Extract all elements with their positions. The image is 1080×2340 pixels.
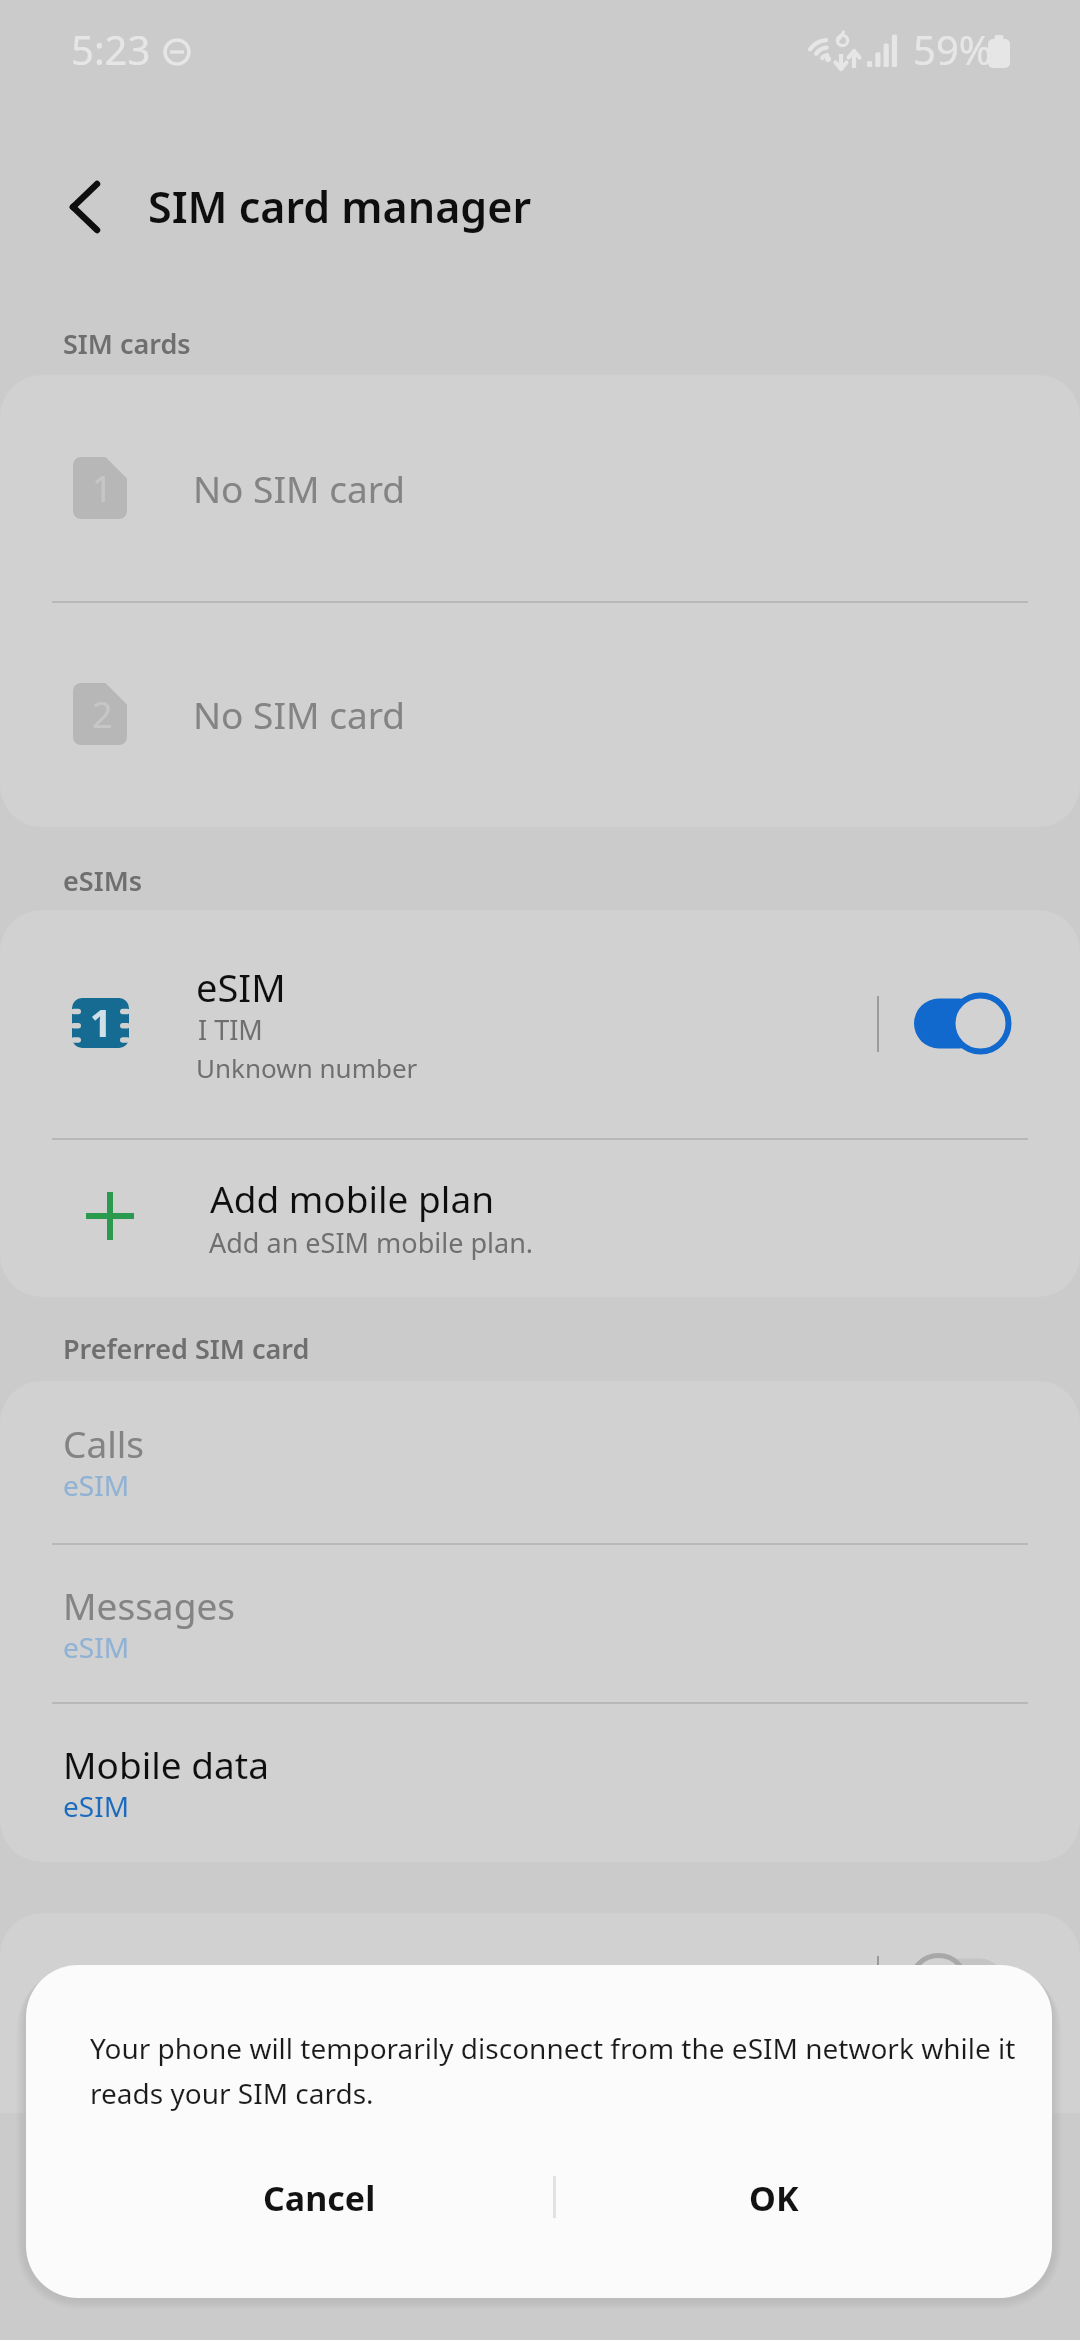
staticText: Calls — [63, 1418, 144, 1468]
staticText: No SIM card — [193, 463, 405, 513]
staticText: 2 — [92, 690, 113, 739]
button[interactable] — [10, 375, 1070, 601]
staticText: 1 — [92, 464, 113, 513]
staticText: 59% — [913, 22, 992, 76]
button[interactable] — [10, 1702, 1070, 1862]
staticText: Cancel — [263, 2175, 376, 2221]
staticText: SIM cards — [63, 325, 191, 362]
button[interactable]: Turn eSIM off — [894, 978, 1030, 1070]
staticText: OK — [749, 2175, 799, 2221]
staticText: Preferred SIM card — [63, 1330, 310, 1367]
staticText: eSIM — [63, 1628, 130, 1666]
button[interactable] — [10, 910, 1070, 1138]
button[interactable]: Navigate up — [46, 171, 118, 243]
button[interactable] — [10, 601, 1070, 827]
staticText: Messages — [63, 1580, 235, 1630]
staticText: 5:23 — [71, 22, 151, 76]
staticText: Mobile data — [63, 1739, 269, 1789]
button[interactable] — [10, 1543, 1070, 1702]
staticText: Add mobile plan — [210, 1173, 495, 1223]
staticText: I TIM — [198, 1011, 263, 1048]
staticText: 1 — [90, 996, 112, 1046]
staticText: Your phone will temporarily disconnect f… — [90, 2029, 1016, 2113]
staticText: SIM card manager — [148, 177, 532, 236]
button[interactable] — [10, 1381, 1070, 1543]
staticText: eSIMs — [63, 862, 143, 899]
button[interactable]: OK — [539, 2165, 1052, 2298]
staticText: Unknown number — [196, 1050, 418, 1085]
staticText: eSIM — [196, 961, 286, 1013]
button[interactable] — [10, 1140, 1070, 1297]
staticText: No SIM card — [193, 689, 405, 739]
button[interactable]: Cancel — [26, 2165, 539, 2298]
staticText: Add an eSIM mobile plan. — [209, 1224, 534, 1261]
staticText: eSIM — [63, 1466, 130, 1504]
staticText: eSIM — [63, 1787, 130, 1825]
